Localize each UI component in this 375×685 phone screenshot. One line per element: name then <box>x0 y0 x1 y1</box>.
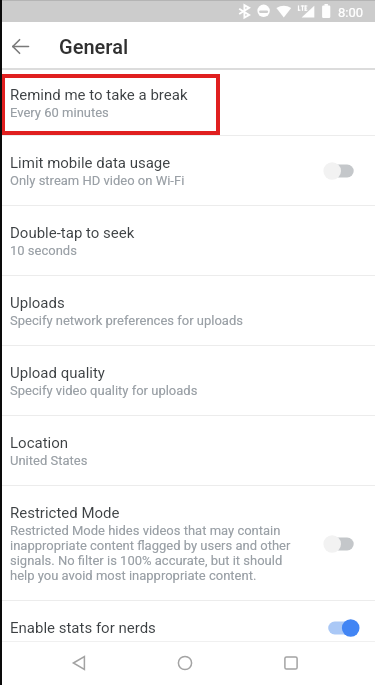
button[interactable]: Restricted Mode <box>0 486 375 601</box>
button[interactable]: Home <box>162 641 208 685</box>
staticText: Limit mobile data usage <box>10 154 171 172</box>
staticText: Every 60 minutes <box>10 105 109 120</box>
staticText: Enable stats for nerds <box>10 619 156 637</box>
staticText: United States <box>10 453 88 468</box>
staticText: General <box>59 35 129 58</box>
button[interactable]: Back <box>4 22 36 70</box>
button[interactable]: Uploads <box>0 276 375 346</box>
staticText: Specify video quality for uploads <box>10 383 198 398</box>
staticText: Double-tap to seek <box>10 224 135 242</box>
button[interactable]: Location <box>0 416 375 486</box>
button[interactable]: Upload quality <box>0 346 375 416</box>
button[interactable]: Enable stats for nerds <box>0 601 375 654</box>
staticText: 8:00 <box>338 5 364 20</box>
button[interactable]: Remind me to take a break <box>0 70 375 136</box>
staticText: 10 seconds <box>10 243 77 258</box>
button[interactable]: Limit mobile data usage <box>0 136 375 206</box>
button[interactable]: Double-tap to seek <box>0 206 375 276</box>
staticText: Uploads <box>10 294 65 312</box>
staticText: Restricted Mode <box>10 504 120 522</box>
staticText: Only stream HD video on Wi-Fi <box>10 173 185 188</box>
staticText: Specify network preferences for uploads <box>10 313 243 328</box>
button[interactable]: Toggle off <box>323 529 375 559</box>
staticText: Upload quality <box>10 364 105 382</box>
staticText: Restricted Mode hides videos that may co… <box>10 523 298 583</box>
button[interactable]: Toggle off <box>323 156 375 186</box>
staticText: Location <box>10 434 69 452</box>
button[interactable]: Back <box>56 641 102 685</box>
staticText: Remind me to take a break <box>10 86 188 104</box>
button[interactable]: Recent apps <box>268 641 314 685</box>
button[interactable]: Toggle on <box>323 613 375 643</box>
